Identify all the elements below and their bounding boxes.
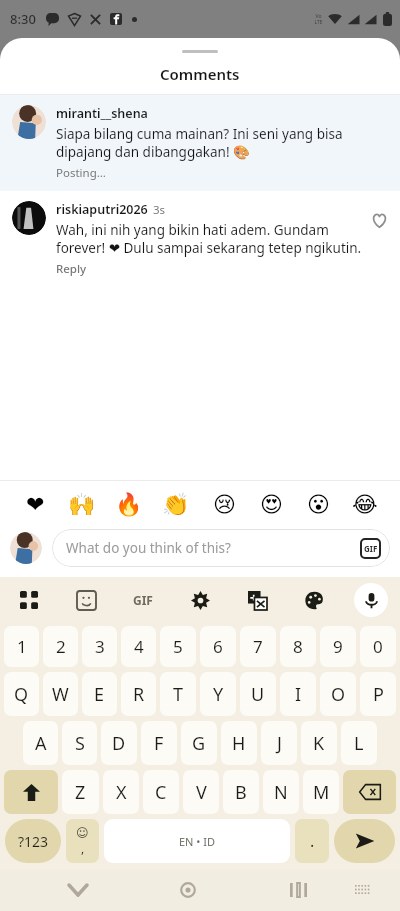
button[interactable]: Recent apps — [278, 870, 318, 910]
staticText: A — [35, 731, 47, 756]
button[interactable]: EN • ID — [104, 819, 290, 863]
staticText: 😢 — [213, 492, 236, 518]
staticText: Q — [14, 682, 29, 707]
staticText: 🔥 — [115, 492, 143, 518]
staticText: M — [313, 780, 330, 805]
staticText: X — [116, 780, 127, 805]
button[interactable]: 6 — [200, 626, 236, 667]
button[interactable]: Translate — [240, 583, 274, 617]
staticText: Siapa bilang cuma mainan? Ini seni yang … — [56, 125, 388, 161]
staticText: N — [274, 780, 288, 805]
staticText: K — [313, 731, 325, 756]
button[interactable]: miranti__shena — [0, 95, 400, 191]
button[interactable]: Switch keyboard — [345, 872, 381, 908]
button[interactable]: Apps — [12, 583, 46, 617]
button[interactable]: I — [280, 672, 316, 716]
staticText: H — [232, 731, 246, 756]
button[interactable]: What do you think of this? — [52, 529, 390, 567]
button[interactable]: 5 — [160, 626, 196, 667]
button[interactable]: 4 — [121, 626, 156, 667]
button[interactable]: L — [341, 721, 377, 765]
staticText: Vo LTE — [314, 13, 323, 26]
button[interactable]: 7 — [240, 626, 276, 667]
button[interactable]: 😢 — [206, 487, 242, 523]
button[interactable]: ?123 — [5, 819, 61, 863]
button[interactable]: Q — [4, 672, 39, 716]
staticText: 8 — [293, 635, 303, 658]
staticText: 😍 — [260, 492, 283, 518]
staticText: , — [81, 840, 85, 856]
button[interactable]: K — [301, 721, 337, 765]
button[interactable]: 😮 — [300, 487, 336, 523]
button[interactable]: Hide keyboard — [58, 870, 98, 910]
button[interactable]: P — [360, 672, 396, 716]
button[interactable]: 🔥 — [111, 487, 147, 523]
button[interactable]: R — [121, 672, 156, 716]
button[interactable]: N — [263, 770, 299, 814]
button[interactable]: O — [320, 672, 356, 716]
button[interactable]: E — [82, 672, 117, 716]
button[interactable]: Send — [334, 819, 395, 863]
button[interactable]: D — [101, 721, 137, 765]
button[interactable]: C — [143, 770, 179, 814]
button[interactable]: S — [62, 721, 97, 765]
button[interactable]: F — [141, 721, 177, 765]
button[interactable]: 2 — [43, 626, 78, 667]
staticText: T — [173, 682, 184, 707]
button[interactable]: ❤️ — [17, 487, 53, 523]
button[interactable]: . — [295, 819, 329, 863]
staticText: E — [94, 682, 105, 707]
staticText: EN • ID — [179, 834, 216, 849]
staticText: Reply — [56, 261, 87, 277]
staticText: G — [192, 731, 206, 756]
staticText: Comments — [160, 64, 240, 84]
button[interactable]: 1 — [4, 626, 39, 667]
button[interactable]: Settings — [183, 583, 217, 617]
staticText: 3s — [153, 202, 166, 218]
staticText: U — [251, 682, 265, 707]
button[interactable]: G — [181, 721, 217, 765]
button[interactable]: Home — [168, 870, 208, 910]
staticText: 2 — [56, 635, 66, 658]
staticText: 👏 — [162, 492, 190, 518]
staticText: miranti__shena — [56, 105, 148, 122]
button[interactable]: riskiaputri2026 — [0, 191, 400, 287]
button[interactable]: M — [303, 770, 339, 814]
button[interactable]: Voice input — [354, 583, 388, 617]
button[interactable]: GIF — [360, 538, 381, 559]
staticText: . — [310, 830, 315, 852]
button[interactable]: 👏 — [158, 487, 194, 523]
staticText: ☺ — [76, 826, 89, 840]
button[interactable]: 3 — [82, 626, 117, 667]
button[interactable]: 8 — [280, 626, 316, 667]
staticText: W — [52, 682, 69, 707]
button[interactable]: J — [261, 721, 297, 765]
button[interactable]: X — [103, 770, 139, 814]
button[interactable]: Y — [200, 672, 236, 716]
button[interactable]: Theme — [297, 583, 331, 617]
button[interactable]: GIF — [126, 583, 160, 617]
button[interactable]: 0 — [360, 626, 396, 667]
button[interactable]: V — [183, 770, 219, 814]
staticText: 7 — [253, 635, 263, 658]
button[interactable]: 😍 — [253, 487, 289, 523]
button[interactable]: Z — [62, 770, 99, 814]
button[interactable]: T — [160, 672, 196, 716]
button[interactable]: W — [43, 672, 78, 716]
staticText: B — [235, 780, 247, 805]
button[interactable]: Shift — [4, 770, 58, 814]
staticText: D — [112, 731, 126, 756]
button[interactable]: Backspace — [343, 770, 396, 814]
button[interactable]: 😂 — [347, 487, 383, 523]
button[interactable]: A — [23, 721, 58, 765]
button[interactable]: H — [221, 721, 257, 765]
button[interactable]: Emoji and comma — [66, 819, 99, 863]
button[interactable]: Stickers — [69, 583, 103, 617]
button[interactable]: U — [240, 672, 276, 716]
button[interactable]: 9 — [320, 626, 356, 667]
button[interactable]: B — [223, 770, 259, 814]
staticText: F — [154, 731, 164, 756]
staticText: 🙌 — [68, 492, 96, 518]
button[interactable]: Like comment — [366, 207, 392, 233]
button[interactable]: 🙌 — [64, 487, 100, 523]
